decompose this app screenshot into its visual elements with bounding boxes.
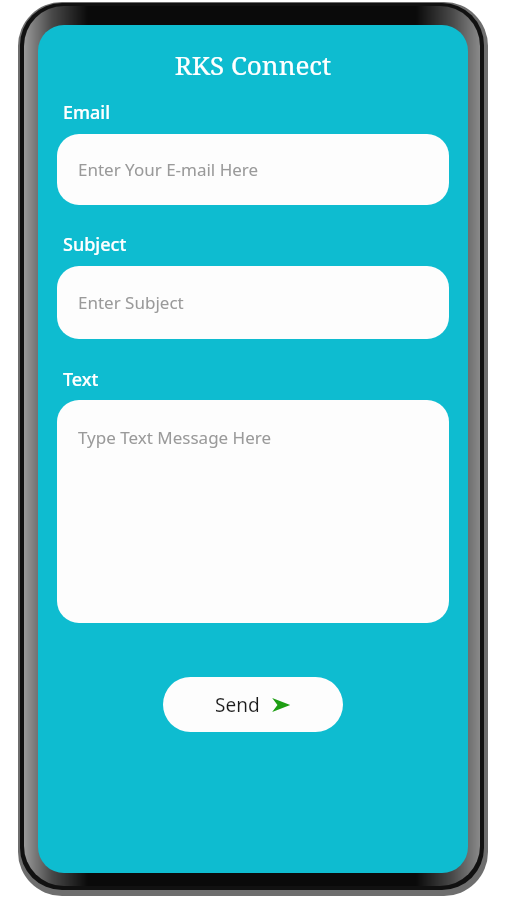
- staticText: RKS Connect: [38, 47, 468, 82]
- staticText: Type Text Message Here: [78, 426, 272, 449]
- other: Send: [270, 694, 292, 716]
- staticText: Email: [63, 100, 111, 125]
- staticText: Send: [215, 692, 260, 718]
- button[interactable]: Send: [163, 677, 343, 732]
- staticText: Enter Subject: [78, 291, 184, 314]
- staticText: Text: [63, 367, 99, 392]
- button[interactable]: Enter Subject: [57, 266, 449, 339]
- button[interactable]: Enter Your E-mail Here: [57, 134, 449, 205]
- staticText: Subject: [63, 232, 127, 257]
- button[interactable]: Type Text Message Here: [57, 400, 449, 623]
- staticText: Enter Your E-mail Here: [78, 158, 259, 181]
